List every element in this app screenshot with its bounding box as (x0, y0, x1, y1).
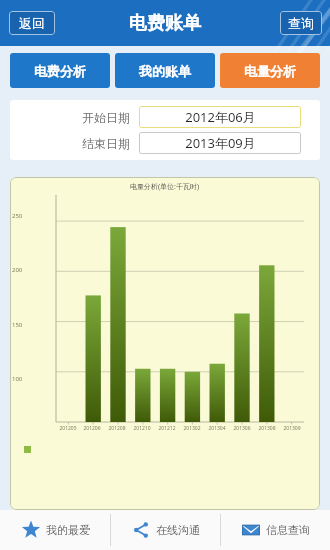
button[interactable]: 返回 (9, 11, 55, 35)
staticText: 在线沟通 (156, 523, 200, 537)
staticText: 我的最爱 (46, 523, 90, 537)
staticText: 结束日期 (82, 136, 130, 151)
button[interactable]: 电量分析 (220, 53, 320, 88)
staticText: 200 (12, 266, 23, 274)
staticText: 201212 (158, 425, 176, 432)
staticText: 查询 (288, 15, 314, 31)
button[interactable]: 2013年09月 (139, 132, 301, 154)
staticText: 开始日期 (82, 110, 130, 125)
staticText: 信息查询 (266, 523, 310, 537)
button[interactable]: 我的账单 (115, 53, 215, 88)
staticText: 2013年09月 (185, 134, 256, 152)
button[interactable]: 在线沟通 (111, 510, 220, 550)
button[interactable]: 查询 (280, 11, 322, 35)
staticText: 250 (12, 212, 23, 220)
staticText: 我的账单 (139, 63, 191, 79)
staticText: 电量分析 (244, 63, 296, 79)
staticText: 201206 (83, 425, 101, 432)
staticText: 2012年06月 (185, 108, 256, 126)
staticText: 电费账单 (129, 12, 201, 35)
staticText: 电量分析(单位:千瓦时) (130, 182, 200, 192)
staticText: 返回 (19, 15, 45, 31)
staticText: 201306 (233, 425, 251, 432)
staticText: 100 (12, 375, 23, 383)
staticText: 201205 (59, 425, 77, 432)
staticText: 201308 (258, 425, 276, 432)
staticText: 201208 (108, 425, 126, 432)
button[interactable]: 信息查询 (221, 510, 330, 550)
staticText: 201309 (283, 425, 301, 432)
staticText: 201210 (133, 425, 151, 432)
staticText: 电费分析 (34, 63, 86, 79)
button[interactable]: 2012年06月 (139, 106, 301, 128)
staticText: 201302 (183, 425, 201, 432)
button[interactable]: 电费分析 (10, 53, 110, 88)
staticText: 201304 (208, 425, 226, 432)
staticText: 150 (12, 321, 23, 329)
button[interactable]: 我的最爱 (0, 510, 110, 550)
